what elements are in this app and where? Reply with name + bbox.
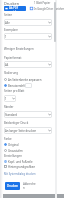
staticText: Ränder	[4, 105, 14, 109]
button[interactable]: Mit Systemdialog drucken	[4, 172, 36, 176]
button[interactable]: An Seitenbreite anpassen	[4, 77, 42, 82]
staticText: Farbe	[4, 137, 12, 141]
button[interactable]: In Google Drive speichern	[30, 6, 64, 11]
staticText: Seiten pro Blatt	[4, 89, 25, 93]
staticText: A4	[5, 63, 9, 67]
button[interactable]	[25, 83, 32, 88]
staticText: In Google Drive speichern	[34, 7, 64, 11]
staticText: An langer Seite drucken	[5, 129, 37, 133]
staticText: Beidseitiger Druck	[4, 121, 29, 125]
button[interactable]: Kopf- und Fußzeile	[4, 159, 33, 164]
staticText: Exemplare	[4, 28, 18, 32]
staticText: 1	[5, 35, 7, 39]
button[interactable]: 1	[4, 33, 52, 40]
staticText: Abbrechen	[23, 182, 37, 190]
staticText: Weniger Einstellungen	[4, 47, 34, 51]
staticText: Einstellungen	[4, 154, 22, 158]
staticText: Seiten	[4, 13, 13, 17]
button[interactable]: An langer Seite drucken	[4, 127, 52, 134]
button[interactable]: Drucken	[5, 182, 20, 190]
button[interactable]: Graustufen	[4, 148, 23, 153]
staticText: Kopf- und Fußzeile	[8, 160, 33, 164]
button[interactable]: Benutzerdefiniert	[4, 83, 32, 88]
staticText: Drucken	[4, 1, 20, 6]
staticText: Drucken	[7, 184, 19, 188]
staticText: Benutzerdefiniert	[8, 84, 32, 88]
staticText: An Seitenbreite anpassen	[8, 78, 42, 82]
button[interactable]: Als PDF speichern	[4, 6, 26, 11]
button[interactable]: Standard	[4, 111, 52, 118]
staticText: Hintergrundgrafiken	[8, 165, 36, 169]
staticText: 1	[5, 97, 7, 101]
button[interactable]: Alle	[4, 19, 52, 26]
staticText: Papierformat	[4, 56, 22, 60]
staticText: Original	[8, 143, 19, 147]
button[interactable]: Hintergrundgrafiken	[4, 164, 36, 169]
button[interactable]: A4	[4, 61, 52, 68]
staticText: 1 Blatt Papier	[34, 1, 51, 5]
staticText: Standard	[5, 113, 17, 117]
staticText: Als PDF speichern	[9, 6, 25, 11]
button[interactable]: Abbrechen	[23, 182, 37, 190]
staticText: Skalierung	[4, 71, 18, 75]
button[interactable]: 1	[4, 95, 16, 102]
staticText: Mit Systemdialog drucken	[4, 172, 36, 176]
staticText: Alle	[5, 21, 10, 25]
button[interactable]: Original	[4, 142, 19, 147]
staticText: Graustufen	[8, 149, 23, 153]
